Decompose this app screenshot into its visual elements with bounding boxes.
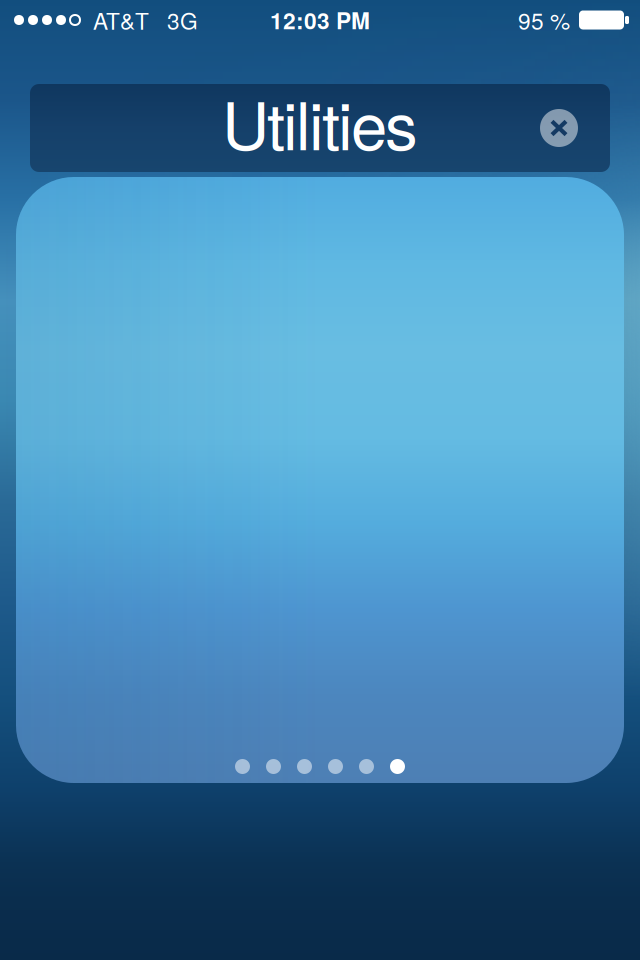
- staticText: 3G: [167, 4, 198, 36]
- staticText: AT&T: [93, 4, 149, 36]
- staticText: Utilities: [222, 75, 418, 169]
- staticText: 12:03 PM: [270, 4, 370, 36]
- button[interactable]: Close folder: [529, 98, 589, 158]
- staticText: 95 %: [518, 4, 570, 36]
